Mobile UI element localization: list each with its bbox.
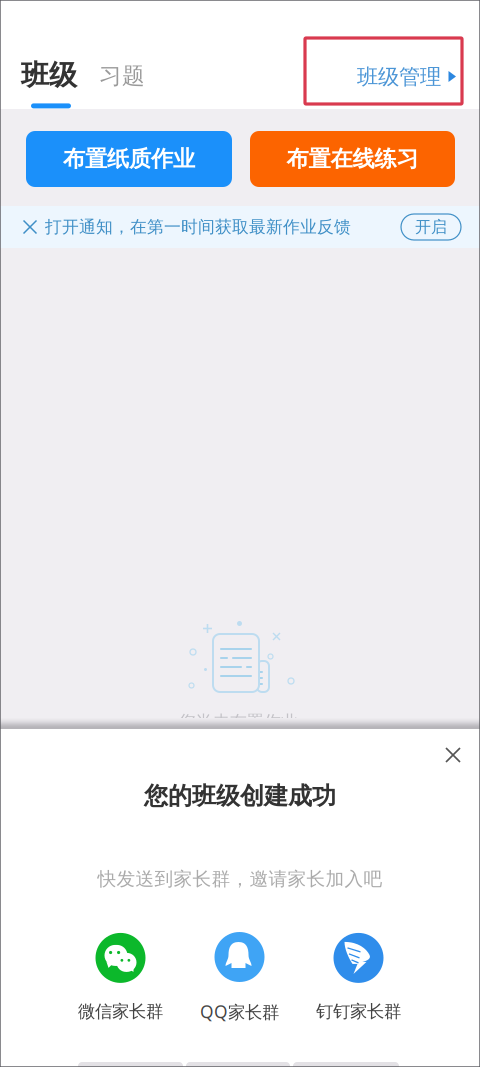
staticText: 您尚未布置作业 [178, 711, 297, 733]
button[interactable]: 习题 [99, 62, 145, 106]
button[interactable]: 布置在线练习 [250, 131, 455, 187]
button[interactable]: Dismiss notification prompt [11, 206, 49, 248]
staticText: 布置在线练习 [286, 145, 418, 173]
staticText: 班级 [21, 58, 77, 92]
button[interactable]: Close [431, 733, 475, 777]
button[interactable]: 班级 [21, 58, 83, 106]
button[interactable]: 微信家长群 [61, 933, 180, 1022]
button[interactable]: 班级管理 [357, 62, 460, 92]
staticText: 您的班级创建成功 [144, 781, 336, 811]
button[interactable]: 开启 [401, 214, 461, 240]
staticText: 开启 [415, 217, 447, 237]
button[interactable]: 布置纸质作业 [26, 131, 232, 187]
staticText: 布置纸质作业 [63, 145, 195, 173]
button[interactable]: 钉钉家长群 [299, 933, 418, 1022]
staticText: QQ家长群 [200, 1000, 279, 1023]
button[interactable]: QQ家长群 [180, 932, 299, 1023]
staticText: 钉钉家长群 [316, 1001, 401, 1022]
staticText: 微信家长群 [78, 1001, 163, 1022]
staticText: 班级管理 [357, 64, 441, 90]
staticText: 快发送到家长群，邀请家长加入吧 [97, 867, 382, 890]
staticText: 打开通知，在第一时间获取最新作业反馈 [45, 216, 351, 238]
staticText: 习题 [99, 62, 145, 90]
